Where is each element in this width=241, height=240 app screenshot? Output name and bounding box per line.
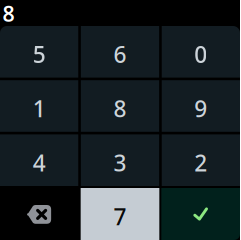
staticText: 1 [33,93,46,123]
button[interactable]: Confirm [161,188,240,240]
staticText: 2 [194,148,207,178]
button[interactable]: 4 [0,134,78,186]
button[interactable]: Delete [0,188,79,240]
button[interactable]: 3 [81,134,159,186]
staticText: 9 [194,93,207,123]
staticText: 5 [33,39,46,69]
staticText: 4 [33,148,46,178]
staticText: 8 [2,0,14,28]
button[interactable]: 9 [162,80,240,132]
button[interactable]: 0 [162,26,240,78]
button[interactable]: 1 [0,80,78,132]
staticText: 8 [113,93,126,123]
button[interactable]: 5 [0,26,78,78]
staticText: 6 [113,39,126,69]
staticText: 0 [194,39,207,69]
staticText: 7 [113,201,126,231]
button[interactable]: 6 [81,26,159,78]
staticText: 3 [113,148,126,178]
button[interactable]: 8 [81,80,159,132]
button[interactable]: 7 [81,188,159,240]
button[interactable]: 2 [162,134,240,186]
